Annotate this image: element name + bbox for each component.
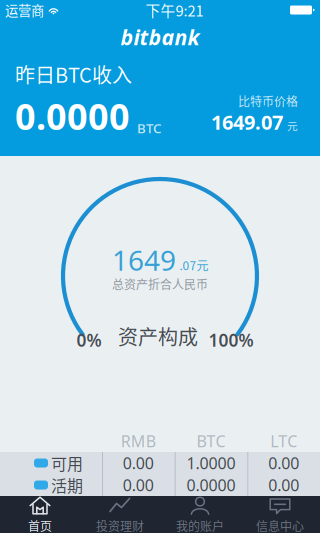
button[interactable]: 我的账户 [160,496,240,533]
staticText: 1649.07 [211,109,283,135]
staticText: LTC [270,430,297,452]
staticText: 1.0000 [186,452,235,474]
staticText: 100% [208,328,253,351]
staticText: RMB [121,430,156,452]
staticText: 昨日BTC收入 [15,59,132,88]
staticText: 0.00 [268,474,299,496]
staticText: 0.00 [268,452,299,474]
staticText: 比特币价格 [238,92,298,110]
staticText: 0.0000 [186,474,235,496]
button[interactable]: 投资理财 [80,496,160,533]
staticText: BTC [137,119,161,137]
staticText: 首页 [28,517,52,533]
staticText: 总资产折合人民币 [112,275,208,293]
staticText: 0.00 [123,474,154,496]
staticText: 元 [287,118,298,133]
staticText: 1649 [112,241,176,279]
staticText: 我的账户 [176,517,224,533]
staticText: 0.00 [123,452,154,474]
staticText: 资产构成 [118,321,198,350]
staticText: 0.0000 [15,92,130,140]
staticText: .07元 [179,256,208,274]
staticText: 0% [76,328,101,351]
staticText: 投资理财 [96,517,144,533]
staticText: bitbank [120,23,199,51]
button[interactable]: 信息中心 [240,496,320,533]
staticText: BTC [196,430,225,452]
staticText: 可用 [51,451,83,475]
staticText: 下午9:21 [145,0,203,21]
staticText: 运营商 [5,0,44,20]
button[interactable]: 首页 [0,496,80,533]
staticText: 信息中心 [256,517,304,533]
staticText: 活期 [51,473,83,497]
